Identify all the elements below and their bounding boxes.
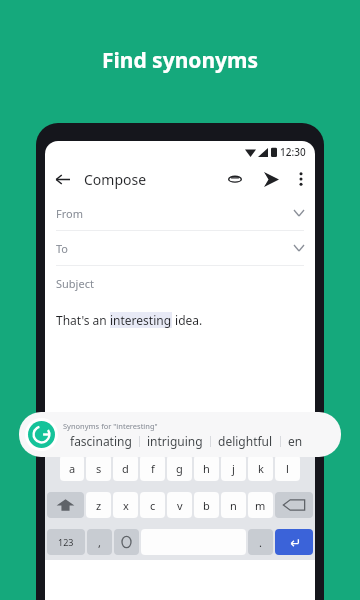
staticText: delightful bbox=[218, 433, 273, 449]
button[interactable]: Attach bbox=[221, 165, 249, 193]
staticText: 1 bbox=[65, 418, 69, 425]
staticText: c bbox=[150, 498, 156, 513]
button[interactable]: e bbox=[99, 418, 124, 444]
staticText: i bbox=[245, 424, 248, 439]
button[interactable]: fascinating bbox=[63, 433, 139, 449]
button[interactable]: f bbox=[140, 455, 165, 481]
button[interactable]: g bbox=[167, 455, 192, 481]
button[interactable]: b bbox=[194, 492, 219, 518]
button[interactable]: q bbox=[47, 418, 71, 444]
staticText: Compose bbox=[84, 170, 147, 189]
button[interactable]: Send bbox=[257, 165, 285, 193]
staticText: d bbox=[122, 461, 129, 476]
button[interactable]: en bbox=[281, 433, 310, 449]
staticText: , bbox=[98, 535, 101, 550]
button[interactable]: Shift bbox=[47, 492, 84, 518]
button[interactable]: delightful bbox=[211, 433, 280, 449]
staticText: z bbox=[96, 498, 102, 513]
staticText: o bbox=[270, 424, 277, 439]
staticText: w bbox=[81, 424, 90, 439]
staticText: 12:30 bbox=[280, 145, 306, 159]
button[interactable]: p bbox=[288, 418, 313, 444]
staticText: k bbox=[258, 461, 264, 476]
staticText: en bbox=[288, 433, 303, 449]
button[interactable]: Back bbox=[45, 162, 79, 196]
button[interactable]: Backspace bbox=[275, 492, 313, 518]
button[interactable]: o bbox=[261, 418, 286, 444]
button[interactable]: v bbox=[167, 492, 192, 518]
staticText: n bbox=[230, 498, 237, 513]
staticText: j bbox=[232, 461, 235, 476]
button[interactable]: w bbox=[73, 418, 97, 444]
button[interactable]: a bbox=[60, 455, 84, 481]
staticText: From bbox=[56, 206, 83, 221]
button[interactable]: . bbox=[248, 529, 273, 555]
staticText: interesting bbox=[110, 312, 172, 328]
button[interactable]: u bbox=[207, 418, 232, 444]
button[interactable]: z bbox=[86, 492, 111, 518]
staticText: l bbox=[286, 461, 289, 476]
staticText: v bbox=[177, 498, 183, 513]
button[interactable]: To bbox=[45, 231, 315, 265]
staticText: h bbox=[203, 461, 210, 476]
button[interactable]: 123 bbox=[47, 529, 85, 555]
button[interactable]: j bbox=[221, 455, 246, 481]
staticText: Subject bbox=[56, 276, 94, 291]
button[interactable]: h bbox=[194, 455, 219, 481]
staticText: That's an bbox=[56, 312, 110, 328]
button[interactable]: n bbox=[221, 492, 246, 518]
button[interactable]: Enter bbox=[275, 529, 313, 555]
button[interactable]: More options bbox=[287, 165, 315, 193]
button[interactable]: Subject bbox=[45, 266, 315, 300]
staticText: g bbox=[176, 461, 183, 476]
button[interactable]: s bbox=[86, 455, 111, 481]
staticText: fascinating bbox=[70, 433, 132, 449]
staticText: . bbox=[259, 535, 262, 550]
button[interactable]: y bbox=[180, 418, 205, 444]
staticText: f bbox=[151, 461, 155, 476]
staticText: idea. bbox=[172, 312, 203, 328]
button[interactable]: From bbox=[45, 196, 315, 230]
staticText: Find synonyms bbox=[0, 46, 360, 75]
button[interactable]: l bbox=[275, 455, 300, 481]
button[interactable]: x bbox=[113, 492, 138, 518]
staticText: a bbox=[69, 461, 76, 476]
button[interactable]: intriguing bbox=[140, 433, 210, 449]
button[interactable]: t bbox=[153, 418, 178, 444]
staticText: e bbox=[108, 424, 115, 439]
staticText: b bbox=[203, 498, 210, 513]
button[interactable]: Synonyms for "interesting" bbox=[19, 412, 341, 457]
staticText: r bbox=[136, 424, 141, 439]
button[interactable]: i bbox=[234, 418, 259, 444]
staticText: x bbox=[123, 498, 129, 513]
button[interactable]: k bbox=[248, 455, 273, 481]
staticText: 123 bbox=[58, 536, 74, 548]
button[interactable]: c bbox=[140, 492, 165, 518]
staticText: Synonyms for "interesting" bbox=[63, 421, 158, 431]
staticText: m bbox=[255, 498, 266, 513]
staticText: intriguing bbox=[147, 433, 203, 449]
button[interactable]: r bbox=[126, 418, 151, 444]
button[interactable]: , bbox=[87, 529, 112, 555]
staticText: t bbox=[164, 424, 168, 439]
button[interactable]: Emoji bbox=[114, 529, 139, 555]
button[interactable]: d bbox=[113, 455, 138, 481]
button[interactable]: m bbox=[248, 492, 273, 518]
staticText: s bbox=[96, 461, 102, 476]
staticText: To bbox=[56, 241, 69, 256]
